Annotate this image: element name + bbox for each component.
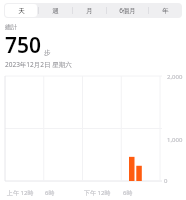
button[interactable]: 月 bbox=[74, 4, 105, 17]
staticText: 步 bbox=[44, 49, 51, 57]
staticText: 下午 12時 bbox=[84, 189, 111, 197]
staticText: 天 bbox=[18, 7, 25, 15]
staticText: 月 bbox=[86, 7, 93, 15]
staticText: 0 bbox=[164, 177, 168, 185]
staticText: 總計 bbox=[5, 23, 17, 31]
staticText: 6個月 bbox=[119, 6, 136, 15]
staticText: 上午 12時 bbox=[7, 189, 34, 197]
staticText: 2023年12月2日 星期六 bbox=[5, 60, 72, 69]
staticText: 6時 bbox=[123, 189, 133, 197]
staticText: 週 bbox=[52, 7, 59, 15]
button[interactable]: 年 bbox=[150, 4, 181, 17]
staticText: 年 bbox=[162, 7, 169, 15]
staticText: 6時 bbox=[45, 189, 55, 197]
staticText: 750 bbox=[5, 31, 42, 60]
button[interactable]: 週 bbox=[40, 4, 71, 17]
staticText: 2,000 bbox=[167, 73, 183, 81]
button[interactable]: 6個月 bbox=[108, 4, 147, 17]
button[interactable]: 天 bbox=[5, 4, 37, 17]
staticText: 1,000 bbox=[167, 136, 183, 144]
